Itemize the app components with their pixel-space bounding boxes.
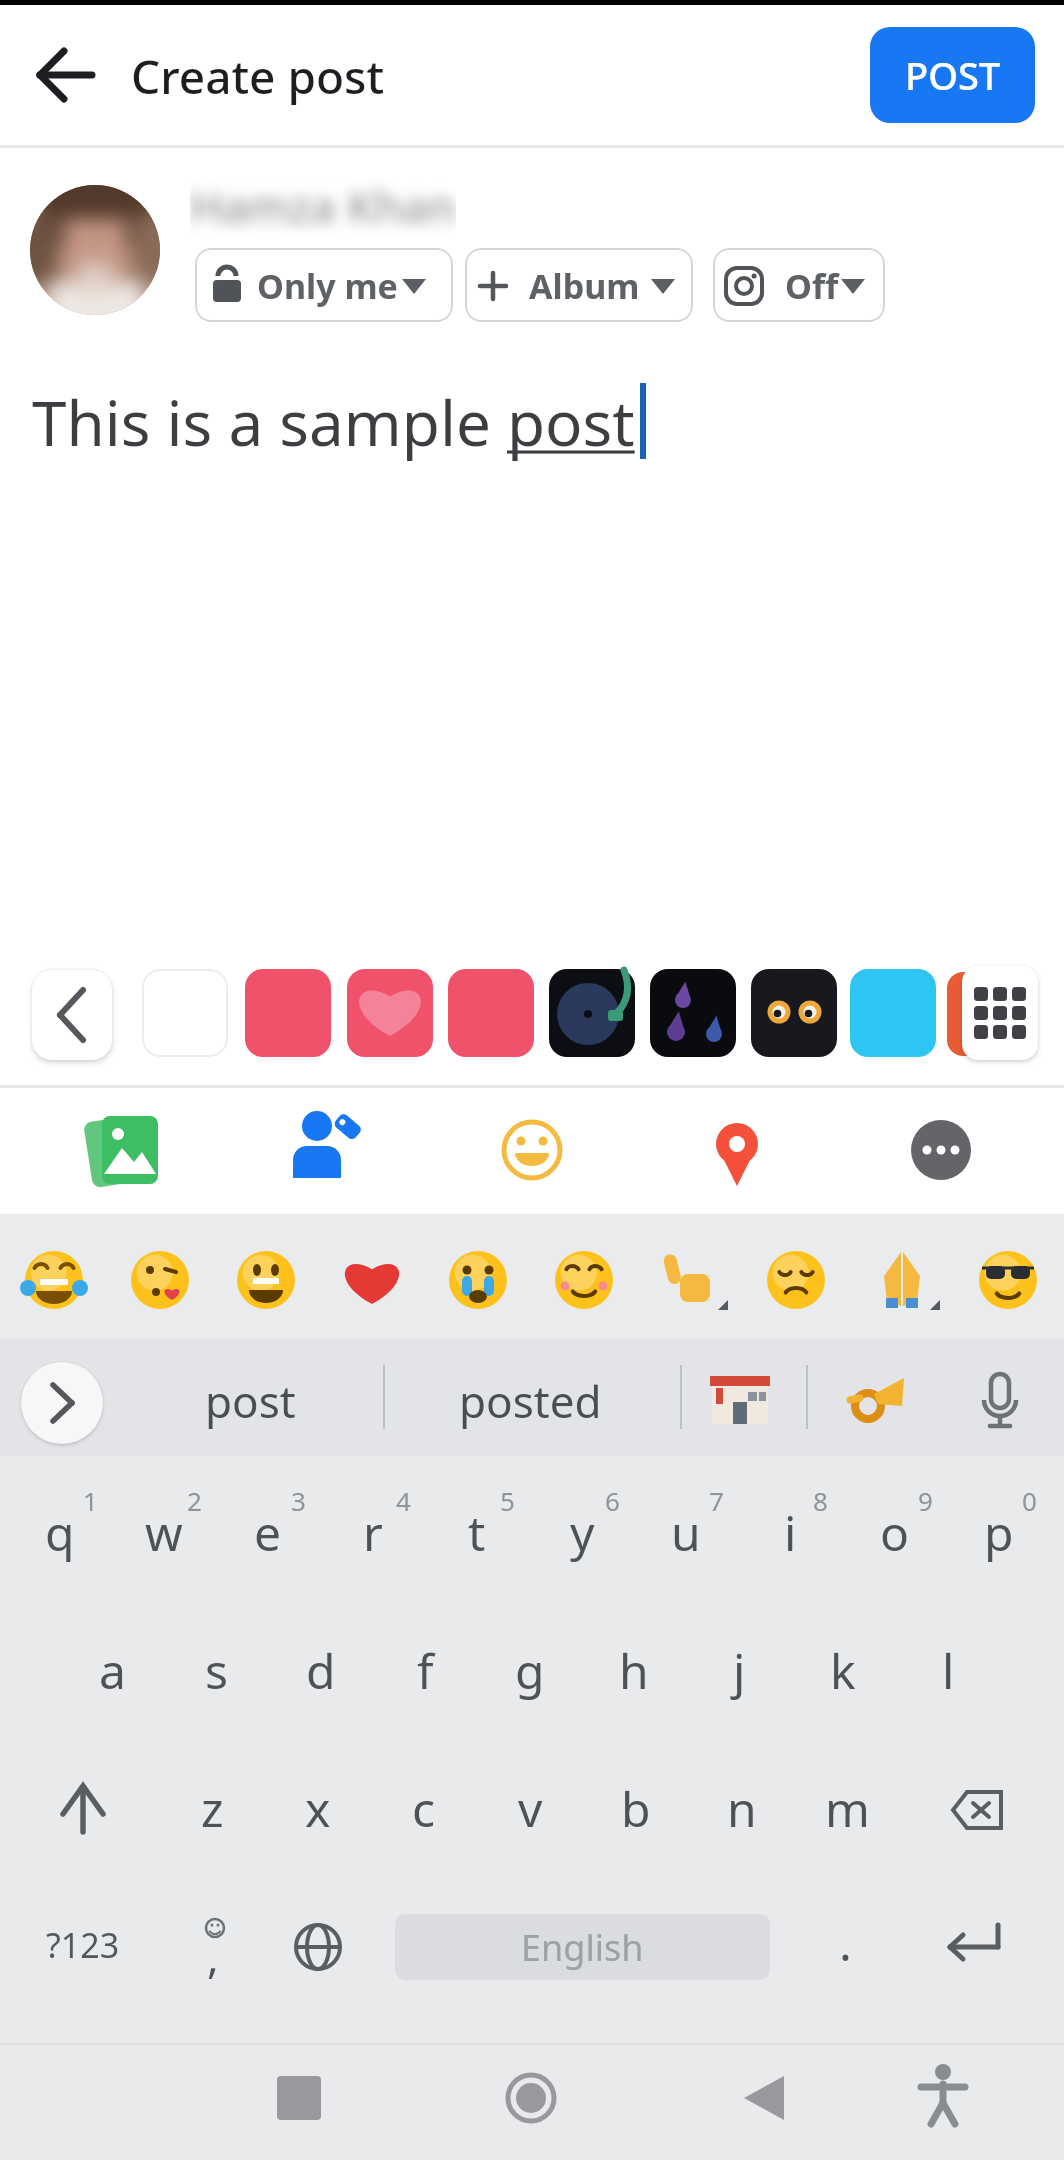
button[interactable]: POST <box>870 27 1035 123</box>
button[interactable] <box>32 970 112 1060</box>
button[interactable]: ?123 <box>23 1905 143 1985</box>
button[interactable]: m <box>797 1765 897 1851</box>
button[interactable] <box>968 1240 1048 1320</box>
button[interactable]: u <box>636 1489 736 1575</box>
staticText: . <box>839 1910 852 1975</box>
button[interactable] <box>962 966 1038 1060</box>
staticText: i <box>784 1500 797 1565</box>
staticText: d <box>306 1638 336 1703</box>
staticText: This is a sample post <box>32 380 635 464</box>
button[interactable]: r <box>323 1489 423 1575</box>
staticText: Off <box>785 263 839 309</box>
button[interactable] <box>347 969 433 1057</box>
button[interactable]: o <box>845 1489 945 1575</box>
button[interactable]: z <box>162 1765 262 1851</box>
button[interactable] <box>33 1770 133 1850</box>
staticText: ?123 <box>46 1922 120 1968</box>
button[interactable] <box>836 1362 916 1442</box>
button[interactable] <box>21 1362 103 1444</box>
button[interactable] <box>700 1362 780 1442</box>
staticText: j <box>733 1638 746 1703</box>
button[interactable]: d <box>271 1627 371 1713</box>
button[interactable] <box>332 1240 412 1320</box>
staticText: Album <box>529 263 640 309</box>
button[interactable] <box>925 1905 1025 1989</box>
button[interactable] <box>465 248 693 322</box>
button[interactable] <box>650 1240 730 1320</box>
button[interactable]: g <box>480 1627 580 1713</box>
button[interactable]: posted <box>410 1356 650 1446</box>
button[interactable]: p <box>949 1489 1049 1575</box>
button[interactable] <box>30 30 100 120</box>
button[interactable] <box>438 1240 518 1320</box>
button[interactable]: x <box>268 1765 368 1851</box>
button[interactable] <box>448 969 534 1057</box>
button[interactable]: , <box>183 1926 243 1986</box>
staticText: g <box>515 1638 545 1703</box>
button[interactable] <box>709 2046 819 2156</box>
button[interactable]: s <box>166 1627 266 1713</box>
button[interactable] <box>75 1100 175 1200</box>
button[interactable]: i <box>740 1489 840 1575</box>
button[interactable]: h <box>584 1627 684 1713</box>
button[interactable] <box>482 1100 582 1200</box>
button[interactable]: j <box>689 1627 789 1713</box>
button[interactable] <box>888 2046 998 2156</box>
button[interactable] <box>195 248 453 322</box>
button[interactable] <box>120 1240 200 1320</box>
button[interactable]: post <box>140 1356 360 1446</box>
button[interactable]: b <box>586 1765 686 1851</box>
button[interactable] <box>713 248 885 322</box>
button[interactable]: c <box>374 1765 474 1851</box>
button[interactable] <box>14 1240 94 1320</box>
button[interactable]: English <box>395 1914 770 1980</box>
button[interactable]: v <box>480 1765 580 1851</box>
button[interactable] <box>850 969 936 1057</box>
staticText: m <box>825 1776 870 1841</box>
staticText: 7 <box>709 1483 724 1518</box>
button[interactable] <box>544 1240 624 1320</box>
staticText: q <box>45 1500 75 1565</box>
staticText: h <box>619 1638 649 1703</box>
button[interactable] <box>268 1905 368 1989</box>
button[interactable] <box>756 1240 836 1320</box>
staticText: l <box>942 1638 955 1703</box>
button[interactable]: f <box>375 1627 475 1713</box>
button[interactable]: q <box>10 1489 110 1575</box>
button[interactable]: t <box>427 1489 527 1575</box>
button[interactable] <box>751 969 837 1057</box>
staticText: 6 <box>605 1483 620 1518</box>
button[interactable]: n <box>692 1765 792 1851</box>
button[interactable] <box>891 1100 991 1200</box>
button[interactable] <box>927 1770 1027 1850</box>
button[interactable] <box>226 1240 306 1320</box>
button[interactable] <box>275 1100 375 1200</box>
staticText: Hamza Khan <box>190 176 456 236</box>
button[interactable] <box>650 969 736 1057</box>
staticText: k <box>830 1638 856 1703</box>
button[interactable] <box>244 2046 354 2156</box>
button[interactable]: . <box>815 1907 875 1977</box>
staticText: 0 <box>1022 1483 1037 1518</box>
button[interactable] <box>476 2046 586 2156</box>
button[interactable] <box>862 1240 942 1320</box>
button[interactable]: w <box>114 1489 214 1575</box>
staticText: 4 <box>396 1483 411 1518</box>
staticText: a <box>99 1638 126 1703</box>
button[interactable] <box>960 1362 1040 1442</box>
button[interactable]: k <box>793 1627 893 1713</box>
staticText: post <box>205 1371 296 1431</box>
button[interactable] <box>549 969 635 1057</box>
button[interactable] <box>687 1100 787 1200</box>
button[interactable]: y <box>532 1489 632 1575</box>
button[interactable] <box>245 969 331 1057</box>
staticText: 2 <box>187 1483 202 1518</box>
staticText: w <box>145 1500 183 1565</box>
staticText: Only me <box>257 263 398 309</box>
button[interactable]: e <box>218 1489 318 1575</box>
button[interactable]: a <box>62 1627 162 1713</box>
staticText: English <box>521 1923 644 1972</box>
staticText: t <box>468 1500 486 1565</box>
button[interactable]: l <box>898 1627 998 1713</box>
button[interactable] <box>142 969 228 1057</box>
